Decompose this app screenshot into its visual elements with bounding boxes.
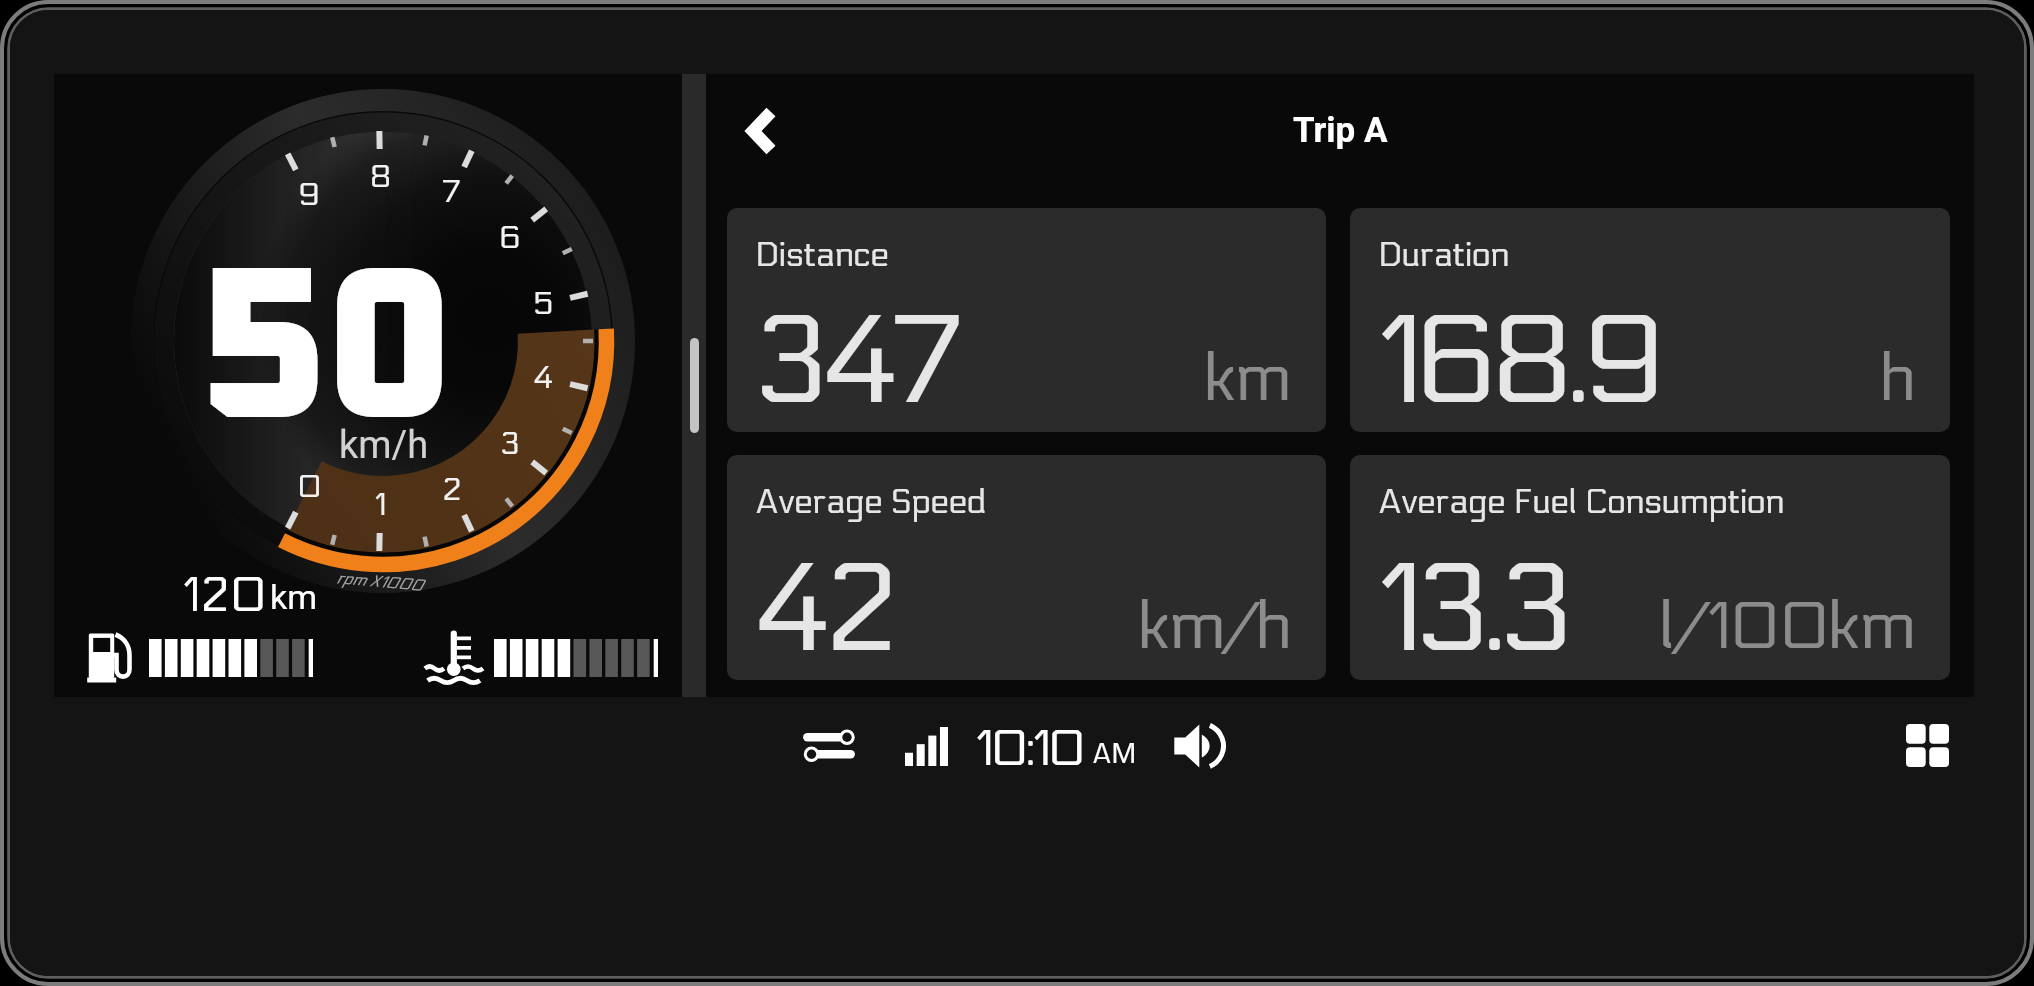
staticText: Average Speed	[755, 482, 987, 522]
staticText: Trip A	[1293, 110, 1388, 151]
button[interactable]: Distance	[727, 208, 1326, 432]
staticText: Distance	[755, 235, 889, 275]
staticText: 50	[203, 247, 452, 462]
staticText: AM	[1092, 737, 1137, 770]
staticText: km/h	[339, 423, 429, 468]
button[interactable]: Volume	[1174, 719, 1226, 769]
staticText: 120	[182, 567, 267, 624]
staticText: 42	[753, 538, 890, 680]
staticText: 168.9	[1376, 290, 1658, 432]
staticText: 8	[369, 158, 392, 196]
button[interactable]: Duration	[1350, 208, 1950, 432]
staticText: 6	[499, 219, 521, 257]
button[interactable]: Apps	[1906, 724, 1949, 767]
staticText: km	[270, 577, 318, 617]
staticText: 347	[753, 290, 958, 432]
button[interactable]: Average Fuel Consumption	[1350, 455, 1950, 680]
staticText: Average Fuel Consumption	[1378, 482, 1784, 522]
staticText: 2	[442, 471, 462, 509]
button[interactable]: Average Speed	[727, 455, 1326, 680]
staticText: rpm X1000	[335, 568, 424, 595]
staticText: 3	[500, 425, 520, 463]
button[interactable]: Back	[741, 91, 805, 155]
staticText: km/h	[1138, 588, 1290, 666]
button[interactable]: Sound settings	[803, 728, 855, 764]
staticText: 5	[533, 285, 554, 323]
staticText: l/100km	[1659, 588, 1914, 666]
staticText: Duration	[1378, 235, 1509, 275]
staticText: km	[1204, 340, 1290, 418]
staticText: 0	[297, 468, 322, 506]
staticText: 9	[298, 176, 320, 214]
staticText: 1	[374, 486, 387, 524]
staticText: 10:10	[975, 720, 1083, 778]
staticText: h	[1880, 340, 1914, 418]
staticText: 4	[533, 359, 554, 397]
staticText: 7	[442, 173, 462, 211]
staticText: 13.3	[1376, 538, 1566, 680]
